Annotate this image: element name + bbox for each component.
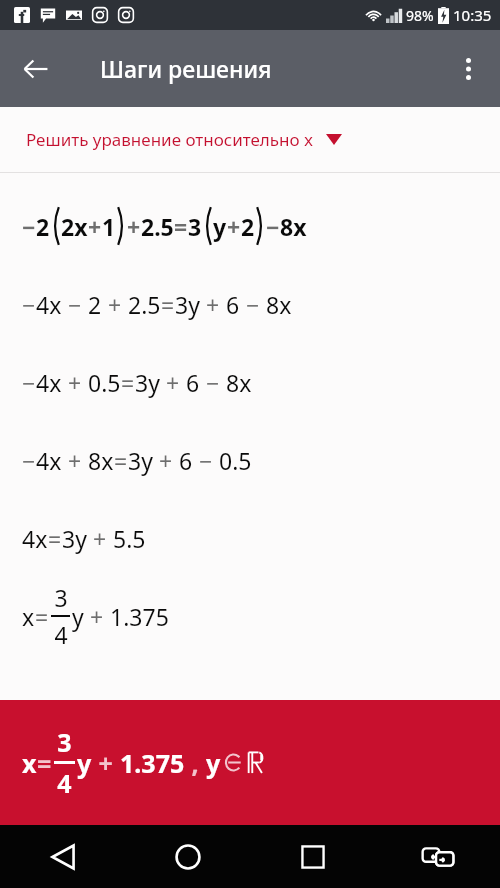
button[interactable]: Решить уравнение относительно x [0,107,500,172]
button[interactable]: − [0,187,500,265]
staticText: = [161,289,175,320]
staticText: 3y [62,523,87,554]
staticText: 4x [36,445,62,476]
staticText: − [22,367,36,398]
staticText: − [200,367,226,398]
staticText: 2 [36,211,50,242]
staticText: 3 [57,725,72,759]
staticText: + [153,445,179,476]
staticText: 5.5 [113,523,146,554]
staticText: 4 [54,619,68,650]
staticText: x [22,746,37,780]
staticText: − [193,445,219,476]
staticText: = [121,367,135,398]
staticText: 8x [226,367,252,398]
button[interactable]: − [0,343,500,421]
staticText: + [227,211,241,242]
button[interactable]: Split screen [375,825,500,888]
staticText: 3 [54,582,68,613]
staticText: Решить уравнение относительно x [26,128,314,151]
button[interactable]: More options [444,45,492,93]
staticText: − [22,211,36,242]
staticText: + [62,445,88,476]
staticText: y [206,746,221,780]
staticText: 2 [88,289,102,320]
staticText: 8x [266,289,292,320]
staticText: + [160,367,186,398]
staticText: 6 [186,367,200,398]
staticText: 2x [61,211,88,242]
staticText: − [22,289,36,320]
staticText: + [87,523,113,554]
staticText: 4x [22,523,48,554]
staticText: + [92,746,120,780]
staticText: x [22,601,35,632]
staticText: = [37,746,52,780]
staticText: 6 [179,445,193,476]
staticText: 3 [188,211,202,242]
button[interactable]: Recent apps [250,825,375,888]
staticText: 1.375 [110,601,169,632]
button[interactable]: Back [12,45,60,93]
staticText: 2.5 [141,211,174,242]
button[interactable]: Home [125,825,250,888]
staticText: 1 [102,211,116,242]
button[interactable]: − [0,265,500,343]
staticText: = [114,445,128,476]
button[interactable]: − [0,421,500,499]
button[interactable]: 4x [0,499,500,577]
staticText: y [72,601,84,632]
staticText: 1.375 [120,746,185,780]
staticText: 3y [128,445,153,476]
staticText: − [240,289,266,320]
staticText: + [102,289,128,320]
staticText: , [185,746,206,780]
staticText: 0.5 [88,367,121,398]
staticText: = [48,523,62,554]
staticText: y [77,746,92,780]
staticText: 10:35 [453,5,492,25]
staticText: 2.5 [128,289,161,320]
staticText: = [174,211,188,242]
staticText: Шаги решения [100,53,272,84]
button[interactable]: Back [0,825,125,888]
staticText: + [84,601,110,632]
staticText: − [22,445,36,476]
staticText: + [200,289,226,320]
staticText: + [88,211,102,242]
staticText: − [266,211,280,242]
staticText: 0.5 [219,445,252,476]
staticText: 4 [57,766,72,800]
staticText: + [127,211,141,242]
staticText: 2 [241,211,255,242]
staticText: + [62,367,88,398]
staticText: 4x [36,289,62,320]
staticText: − [62,289,88,320]
staticText: = [35,601,49,632]
button[interactable]: x [0,577,500,655]
staticText: 3y [135,367,160,398]
staticText: 6 [226,289,240,320]
staticText: 98% [406,6,434,25]
staticText: 3y [175,289,200,320]
staticText: y [213,211,227,242]
staticText: 8x [88,445,114,476]
button[interactable]: x [0,700,500,825]
staticText: 8x [280,211,307,242]
staticText: 4x [36,367,62,398]
